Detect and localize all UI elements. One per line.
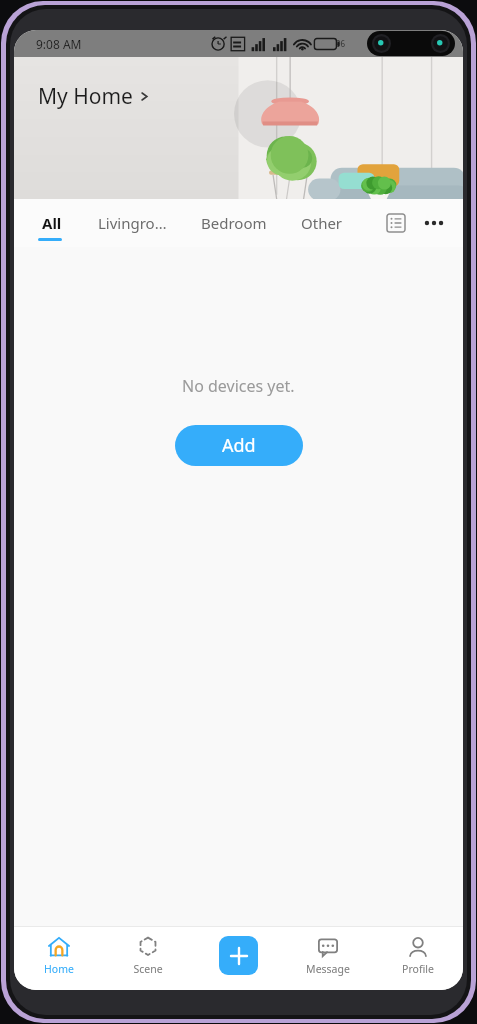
staticText: 9:08 AM	[36, 36, 82, 52]
button[interactable]: Home	[14, 926, 103, 990]
button[interactable]: Message	[283, 926, 373, 990]
staticText: No devices yet.	[182, 375, 295, 397]
staticText: Add	[222, 433, 256, 458]
button[interactable]: Bedroom	[197, 207, 271, 239]
button[interactable]: Profile	[373, 926, 463, 990]
button[interactable]: Add device	[219, 936, 258, 975]
staticText: Bedroom	[201, 213, 267, 233]
button[interactable]: List view	[379, 206, 413, 240]
staticText: 96	[336, 38, 346, 49]
staticText: Message	[306, 962, 350, 976]
button[interactable]: Scene	[103, 926, 193, 990]
button[interactable]: More options	[415, 204, 453, 242]
staticText: All	[42, 213, 62, 233]
button[interactable]: My Home	[38, 82, 150, 111]
button[interactable]: Livingro…	[94, 207, 171, 239]
staticText: Home	[44, 962, 74, 976]
button[interactable]: Other	[297, 207, 347, 239]
button[interactable]: Add	[175, 425, 303, 466]
staticText: Other	[301, 213, 343, 233]
staticText: Livingro…	[98, 213, 167, 233]
staticText: My Home	[38, 82, 133, 111]
staticText: Profile	[402, 962, 434, 976]
staticText: Scene	[133, 962, 163, 976]
button[interactable]: All	[38, 207, 66, 239]
